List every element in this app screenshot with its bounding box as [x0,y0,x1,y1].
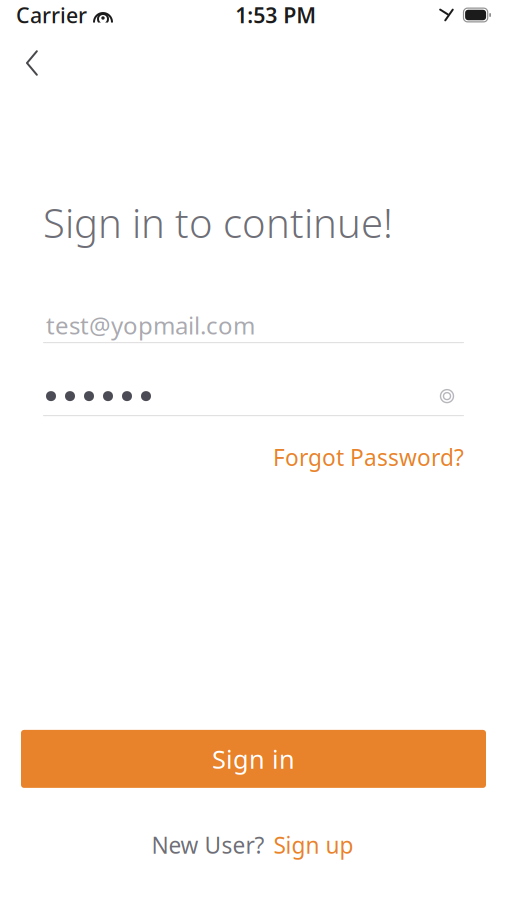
button[interactable]: Sign up [271,826,355,864]
staticText: test@yopmail.com [46,309,255,341]
staticText: 1:53 PM [235,1,316,29]
staticText: Forgot Password? [273,442,464,472]
staticText: Sign in [212,742,295,776]
staticText: Carrier [16,1,87,29]
staticText: Sign in to continue! [43,196,393,249]
button[interactable]: Show password [430,379,464,413]
staticText: New User? [151,830,264,860]
button[interactable]: Forgot Password? [273,436,464,478]
button[interactable]: Back [10,41,54,85]
staticText: Sign up [273,830,353,860]
button[interactable]: Sign in [21,730,486,788]
